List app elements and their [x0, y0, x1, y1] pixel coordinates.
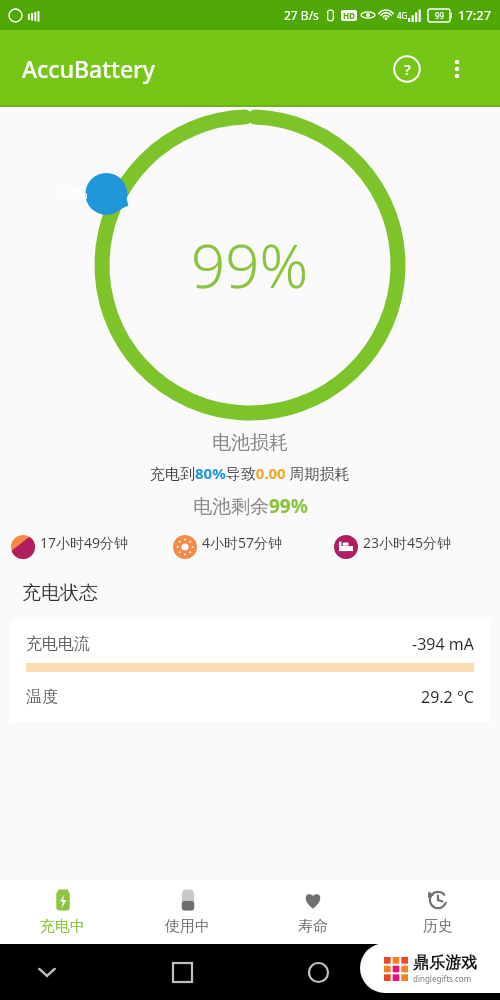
- staticText: 充电电流: [26, 634, 90, 654]
- button[interactable]: Recent apps: [159, 949, 205, 995]
- button[interactable]: 4小时57分钟: [170, 533, 331, 559]
- staticText: 温度: [26, 687, 58, 707]
- staticText: -394 mA: [412, 633, 474, 655]
- staticText: 29.2 °C: [421, 686, 474, 708]
- staticText: 电池剩余99%: [193, 493, 308, 519]
- staticText: 寿命: [298, 917, 328, 936]
- button[interactable]: Hide: [24, 949, 70, 995]
- button[interactable]: Back: [430, 949, 476, 995]
- staticText: 电池损耗: [212, 431, 288, 455]
- staticText: 鼎乐游戏: [413, 953, 477, 973]
- staticText: 99%: [191, 224, 309, 306]
- staticText: 23小时45分钟: [363, 533, 452, 552]
- staticText: 充电中: [40, 917, 85, 936]
- button[interactable]: 充电电流: [10, 619, 490, 722]
- button[interactable]: Home: [295, 949, 341, 995]
- button[interactable]: 使用中: [125, 880, 250, 944]
- button[interactable]: 充电中: [0, 880, 125, 944]
- staticText: 99: [435, 10, 445, 21]
- staticText: 17:27: [458, 6, 492, 24]
- staticText: 4G: [397, 10, 408, 21]
- button[interactable]: 17小时49分钟: [8, 533, 170, 559]
- button[interactable]: 23小时45分钟: [331, 533, 492, 559]
- button[interactable]: Help: [384, 46, 430, 92]
- staticText: ?: [404, 59, 411, 79]
- staticText: 充电到80%导致0.00 周期损耗: [150, 463, 350, 483]
- staticText: 17小时49分钟: [40, 533, 129, 552]
- button[interactable]: 历史: [375, 880, 500, 944]
- staticText: 4小时57分钟: [202, 533, 283, 552]
- staticText: 27 B/s: [284, 7, 319, 23]
- staticText: HD: [343, 10, 355, 21]
- staticText: dinglegifts.com: [413, 973, 472, 984]
- staticText: 历史: [423, 917, 453, 936]
- staticText: 80%: [62, 185, 88, 203]
- staticText: AccuBattery: [22, 53, 155, 84]
- button[interactable]: 寿命: [250, 880, 375, 944]
- staticText: 使用中: [165, 917, 210, 936]
- staticText: 充电状态: [22, 581, 98, 605]
- button[interactable]: More options: [436, 48, 478, 90]
